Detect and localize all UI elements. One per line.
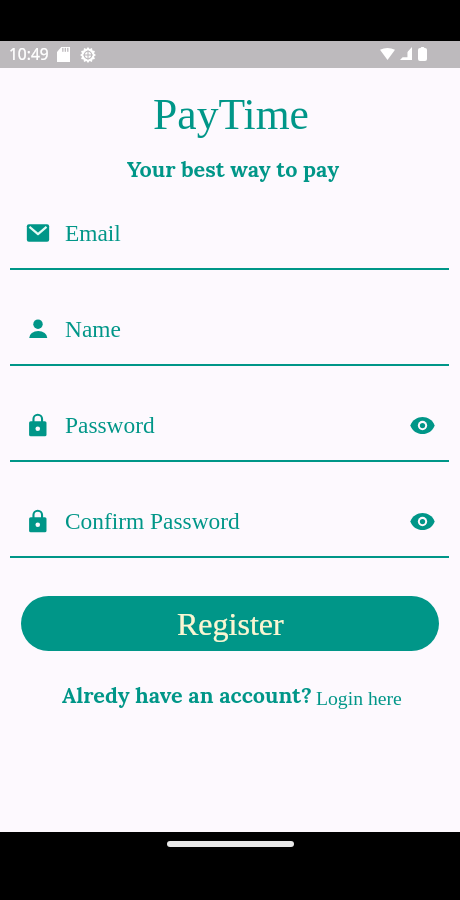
button[interactable]: Toggle password visibility [406, 409, 438, 441]
staticText: Your best way to pay [3, 155, 460, 183]
staticText: Email [65, 220, 121, 246]
button[interactable]: Login here [316, 687, 402, 709]
staticText: Password [65, 412, 155, 438]
button[interactable]: Toggle password visibility [406, 505, 438, 537]
staticText: PayTime [1, 90, 460, 138]
staticText: Name [65, 316, 121, 342]
staticText: 10:49 [9, 43, 49, 64]
button[interactable]: Register [21, 596, 439, 651]
staticText: Register [177, 606, 284, 641]
button[interactable]: Alredy have an account? [62, 681, 312, 709]
staticText: Confirm Password [65, 508, 240, 534]
